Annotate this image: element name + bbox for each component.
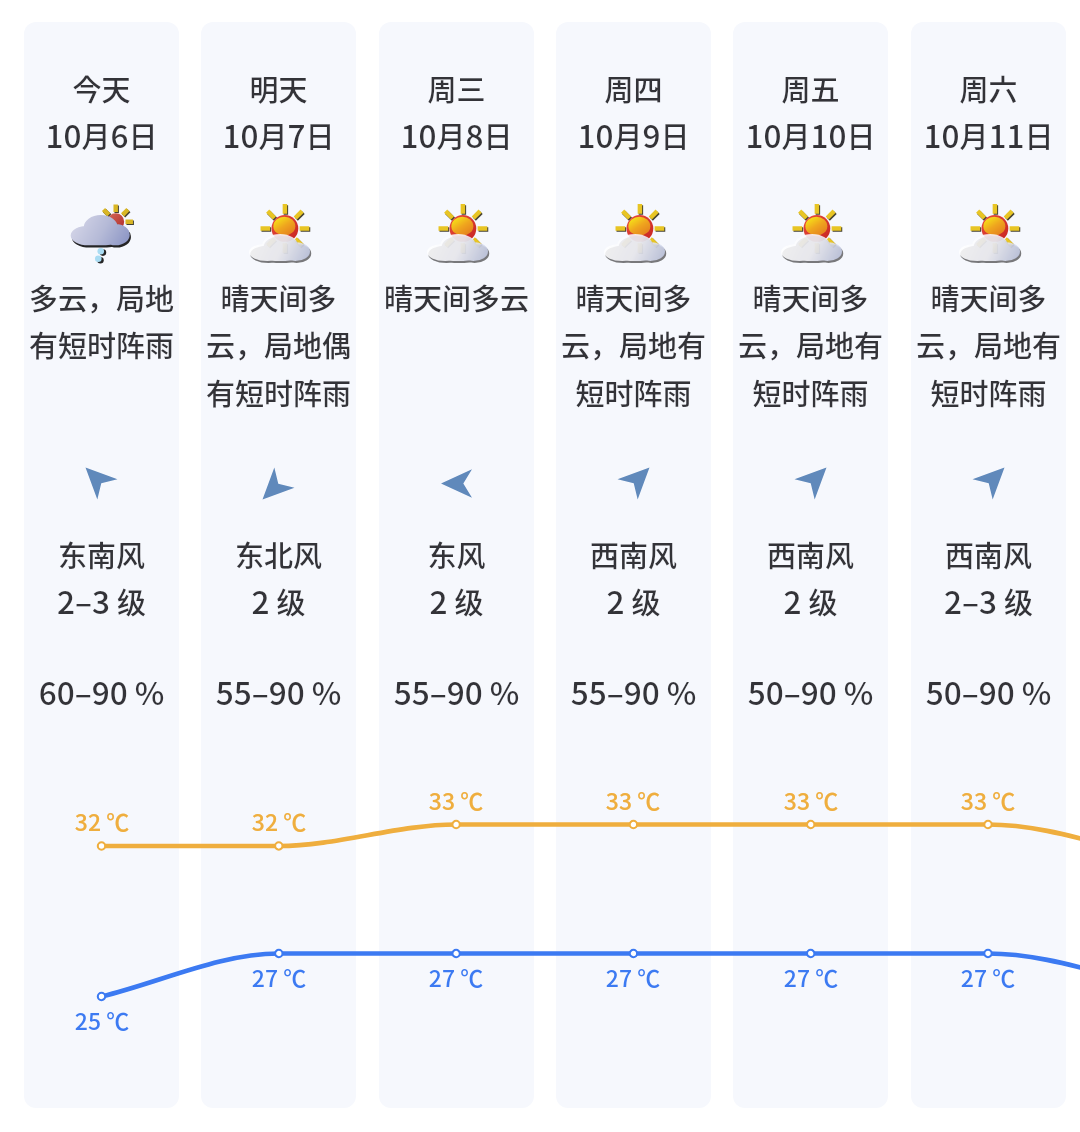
staticText: 33 ℃ [573, 783, 693, 816]
button[interactable]: 今天 10月6日 [24, 22, 179, 1108]
other: 多云，局地有短时阵雨 [71, 203, 133, 265]
staticText: 33 ℃ [928, 783, 1048, 816]
staticText: 27 ℃ [396, 960, 516, 993]
staticText: 晴天间多云 [379, 276, 534, 318]
other: 东南风 [86, 468, 117, 499]
staticText: 今天 10月6日 [24, 67, 179, 158]
staticText: 27 ℃ [751, 960, 871, 993]
button[interactable]: 周六 10月11日 [911, 22, 1066, 1108]
staticText: 晴天间多云，局地有短时阵雨 [911, 276, 1066, 414]
staticText: 西南风 2 级 [733, 533, 888, 624]
staticText: 东风 2 级 [379, 533, 534, 624]
button[interactable]: 明天 10月7日 [201, 22, 356, 1108]
other: 晴天间多云，局地有短时阵雨 [603, 203, 665, 265]
other: 晴天间多云，局地偶有短时阵雨 [248, 203, 310, 265]
other: 西南风 [795, 468, 826, 499]
other: 东北风 [263, 468, 294, 499]
button[interactable]: 周五 10月10日 [733, 22, 888, 1108]
staticText: 晴天间多云，局地偶有短时阵雨 [201, 276, 356, 414]
other: 东风 [441, 468, 472, 499]
staticText: 55–90 % [379, 668, 534, 714]
other: 晴天间多云 [426, 203, 488, 265]
staticText: 晴天间多云，局地有短时阵雨 [556, 276, 711, 414]
staticText: 60–90 % [24, 668, 179, 714]
staticText: 55–90 % [556, 668, 711, 714]
staticText: 东北风 2 级 [201, 533, 356, 624]
staticText: 32 ℃ [219, 804, 339, 837]
staticText: 50–90 % [733, 668, 888, 714]
staticText: 55–90 % [201, 668, 356, 714]
other: 晴天间多云，局地有短时阵雨 [958, 203, 1020, 265]
staticText: 25 ℃ [42, 1003, 162, 1036]
button[interactable]: 周四 10月9日 [556, 22, 711, 1108]
staticText: 33 ℃ [751, 783, 871, 816]
other: 晴天间多云，局地有短时阵雨 [780, 203, 842, 265]
staticText: 西南风 2–3 级 [911, 533, 1066, 624]
staticText: 周六 10月11日 [911, 67, 1066, 158]
staticText: 27 ℃ [219, 960, 339, 993]
staticText: 西南风 2 级 [556, 533, 711, 624]
staticText: 东南风 2–3 级 [24, 533, 179, 624]
other: 西南风 [973, 468, 1004, 499]
staticText: 晴天间多云，局地有短时阵雨 [733, 276, 888, 414]
staticText: 明天 10月7日 [201, 67, 356, 158]
staticText: 33 ℃ [396, 783, 516, 816]
button[interactable]: 周三 10月8日 [379, 22, 534, 1108]
staticText: 多云，局地有短时阵雨 [24, 276, 179, 366]
staticText: 32 ℃ [42, 804, 162, 837]
staticText: 周三 10月8日 [379, 67, 534, 158]
other: 西南风 [618, 468, 649, 499]
staticText: 27 ℃ [573, 960, 693, 993]
staticText: 周五 10月10日 [733, 67, 888, 158]
staticText: 周四 10月9日 [556, 67, 711, 158]
staticText: 27 ℃ [928, 960, 1048, 993]
staticText: 50–90 % [911, 668, 1066, 714]
